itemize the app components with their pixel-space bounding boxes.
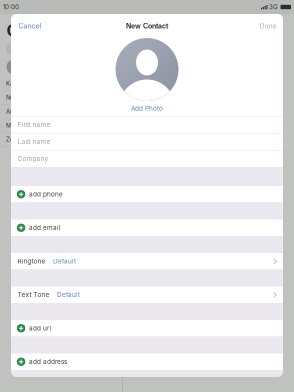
staticText: 10:00 bbox=[3, 3, 19, 11]
staticText: Add Photo bbox=[131, 105, 163, 112]
staticText: Zoe Wells bbox=[6, 136, 32, 143]
staticText: Default bbox=[53, 257, 76, 265]
button[interactable]: Add Photo bbox=[131, 104, 163, 112]
staticText: 3G bbox=[269, 3, 278, 11]
staticText: New Contact bbox=[126, 22, 168, 30]
staticText: add url bbox=[29, 324, 52, 332]
staticText: add address bbox=[29, 358, 67, 366]
staticText: Done bbox=[259, 22, 276, 30]
button[interactable]: Ringtone bbox=[11, 253, 283, 269]
staticText: Nora Diaz bbox=[6, 94, 32, 101]
staticText: Ringtone bbox=[17, 257, 45, 265]
staticText: Text Tone bbox=[17, 291, 49, 299]
staticText: Cancel bbox=[18, 22, 41, 30]
staticText: First name bbox=[17, 121, 50, 129]
staticText: Anna Haro bbox=[6, 108, 34, 115]
button[interactable]: Cancel bbox=[11, 14, 81, 38]
staticText: add phone bbox=[29, 190, 63, 198]
staticText: Mike Tan bbox=[6, 122, 29, 129]
staticText: Kate Bell bbox=[6, 80, 29, 87]
staticText: Company bbox=[17, 155, 48, 163]
staticText: Contacts bbox=[6, 21, 77, 40]
staticText: add email bbox=[29, 224, 61, 232]
button[interactable]: add phone bbox=[11, 186, 283, 202]
button[interactable]: add url bbox=[11, 320, 283, 336]
button[interactable]: Text Tone bbox=[11, 286, 283, 303]
staticText: Default bbox=[57, 291, 80, 299]
button[interactable]: add address bbox=[11, 353, 283, 370]
button[interactable]: add email bbox=[11, 219, 283, 236]
staticText: Last name bbox=[17, 138, 50, 146]
button[interactable]: Done bbox=[213, 14, 283, 38]
